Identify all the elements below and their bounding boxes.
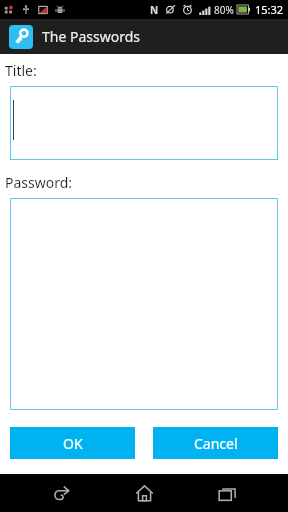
staticText: The Passwords — [42, 27, 140, 46]
button[interactable]: Cancel — [153, 427, 278, 459]
staticText: Title: — [5, 61, 37, 80]
staticText: 15:32 — [255, 2, 284, 17]
staticText: OK — [63, 434, 83, 453]
staticText: Cancel — [194, 434, 238, 453]
staticText: Password: — [5, 173, 73, 192]
button[interactable] — [10, 198, 278, 410]
button[interactable] — [10, 86, 278, 160]
button[interactable]: Recent apps — [205, 474, 249, 512]
button[interactable]: OK — [10, 427, 135, 459]
other: The Passwords app icon — [9, 25, 33, 49]
button[interactable]: Home — [122, 474, 166, 512]
staticText: 80% — [214, 3, 234, 17]
button[interactable]: Back — [39, 474, 83, 512]
staticText: N — [150, 3, 159, 17]
